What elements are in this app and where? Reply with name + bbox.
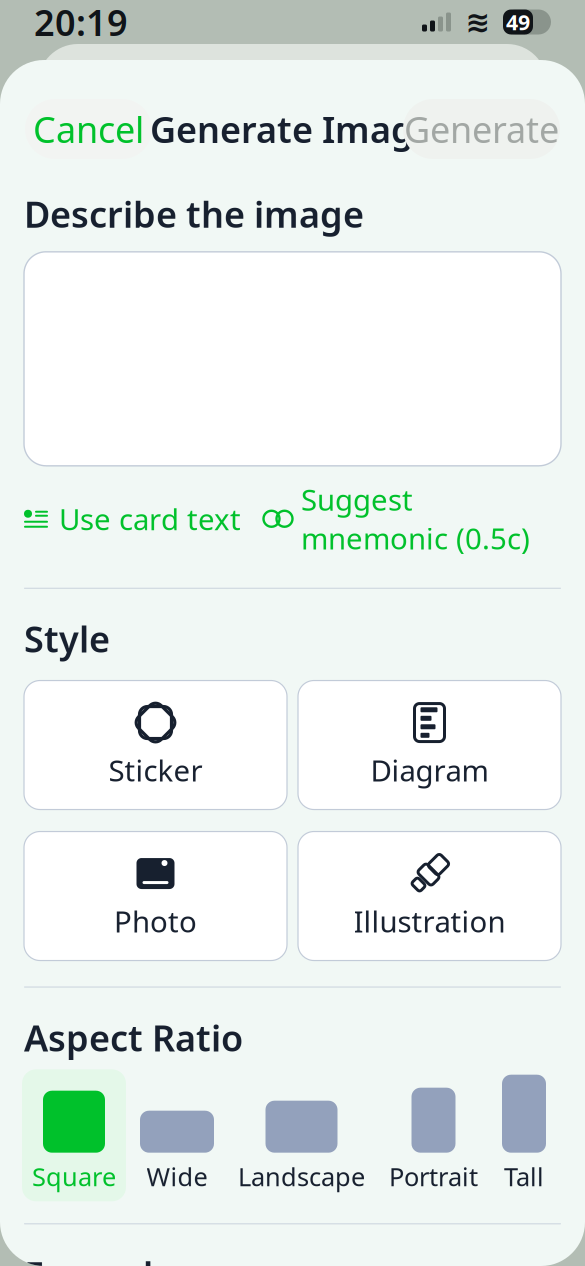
staticText: Landscape xyxy=(238,1160,365,1193)
button[interactable]: Suggest mnemonic (0.5c) xyxy=(263,480,530,558)
staticText: ≋ xyxy=(465,5,490,39)
button[interactable]: Tall xyxy=(492,1069,556,1201)
staticText: Tall xyxy=(504,1160,544,1193)
staticText: Describe the image xyxy=(24,190,364,238)
button[interactable]: Photo xyxy=(24,831,287,960)
staticText: Use card text xyxy=(59,499,241,538)
staticText: Wide xyxy=(146,1160,207,1193)
staticText: 20:19 xyxy=(34,0,128,46)
button[interactable]: Sticker xyxy=(24,680,287,809)
button[interactable]: Landscape xyxy=(228,1069,375,1201)
staticText: Portrait xyxy=(389,1160,478,1193)
button[interactable]: Diagram xyxy=(298,680,561,809)
button[interactable]: Illustration xyxy=(298,831,561,960)
button[interactable]: Portrait xyxy=(379,1069,488,1201)
staticText: Square xyxy=(32,1160,116,1193)
staticText: 49 xyxy=(506,8,530,36)
staticText: Diagram xyxy=(370,750,488,789)
staticText: Illustration xyxy=(353,901,505,940)
staticText: Style xyxy=(24,615,110,662)
button[interactable]: Generate xyxy=(403,99,560,159)
staticText: Cancel xyxy=(33,105,144,153)
button[interactable] xyxy=(24,252,561,466)
staticText: Examples xyxy=(24,1250,192,1266)
button[interactable]: Use card text xyxy=(24,499,241,538)
button[interactable]: Wide xyxy=(130,1069,224,1201)
staticText: Aspect Ratio xyxy=(24,1013,243,1061)
staticText: Suggest mnemonic (0.5c) xyxy=(301,480,530,558)
staticText: Photo xyxy=(114,901,197,940)
staticText: Sticker xyxy=(108,750,202,789)
staticText: Generate Image xyxy=(150,105,435,153)
staticText: Generate xyxy=(404,105,559,153)
button[interactable]: Cancel xyxy=(25,99,152,159)
button[interactable]: Square xyxy=(22,1069,126,1201)
